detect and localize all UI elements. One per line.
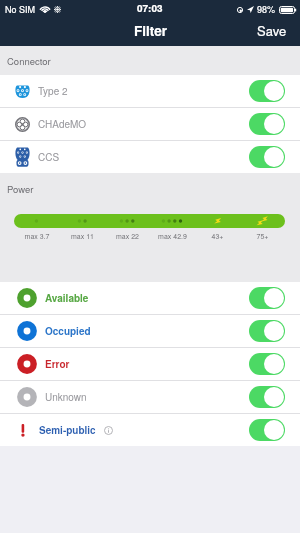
button[interactable]: Toggle	[249, 419, 285, 441]
staticText: max 3.7	[14, 231, 60, 241]
button[interactable]: Toggle	[249, 386, 285, 408]
button[interactable]: Toggle	[249, 320, 285, 342]
button[interactable]: Info	[104, 426, 113, 435]
staticText: max 11	[60, 231, 105, 241]
staticText: Available	[45, 291, 89, 305]
button[interactable]: CHAdeMO	[0, 108, 300, 140]
staticText: Semi-public	[39, 423, 96, 437]
button[interactable]: Toggle	[249, 80, 285, 102]
staticText: 98%	[257, 3, 276, 16]
staticText: Error	[45, 357, 70, 371]
button[interactable]: Unknown	[0, 381, 300, 413]
button[interactable]: Occupied	[0, 315, 300, 347]
button[interactable]: Toggle	[249, 113, 285, 135]
staticText: CCS	[38, 150, 60, 164]
staticText: max 22	[105, 231, 150, 241]
staticText: Connector	[7, 54, 51, 68]
staticText: Filter	[134, 21, 167, 40]
staticText: Type 2	[38, 84, 68, 98]
button[interactable]: Toggle	[249, 146, 285, 168]
staticText: Occupied	[45, 324, 91, 338]
button[interactable]: Error	[0, 348, 300, 380]
button[interactable]: Toggle	[249, 353, 285, 375]
button[interactable]: Available	[0, 282, 300, 314]
staticText: No SIM	[5, 3, 36, 16]
button[interactable]: Type 2	[0, 75, 300, 107]
button[interactable]: Save	[244, 17, 300, 44]
staticText: Unknown	[45, 390, 87, 404]
button[interactable]: CCS	[0, 141, 300, 173]
button[interactable]: Toggle	[249, 287, 285, 309]
staticText: 43+	[195, 231, 240, 241]
staticText: 07:03	[137, 1, 163, 15]
staticText: Power	[7, 182, 34, 196]
staticText: max 42.9	[150, 231, 195, 241]
staticText: Save	[257, 21, 287, 40]
staticText: CHAdeMO	[38, 117, 87, 131]
button[interactable]: Semi-public	[0, 414, 300, 446]
staticText: 75+	[240, 231, 285, 241]
